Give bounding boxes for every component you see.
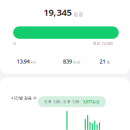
staticText: 3,077걸음 [83,99,100,104]
staticText: 0 [13,41,15,46]
staticText: 21 [99,58,105,65]
staticText: 층 [106,60,110,65]
staticText: 19,345 [43,6,71,18]
staticText: 걸음 [74,11,84,17]
staticText: 839 [63,58,72,65]
staticText: 목표 12,000 [92,41,112,46]
staticText: kcal [73,59,80,65]
staticText: 시간별 걸음 수 [11,95,37,100]
staticText: 13.94 [17,58,30,65]
staticText: km [31,59,36,65]
staticText: 오후 1:00 - 오후 1:30 [44,99,79,104]
staticText: · [80,99,81,104]
